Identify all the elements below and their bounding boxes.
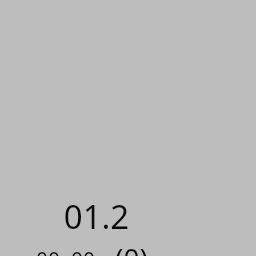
staticText: 00. 00	[36, 246, 96, 256]
staticText: 01.2	[2, 194, 191, 239]
staticText: (0)	[115, 239, 148, 256]
